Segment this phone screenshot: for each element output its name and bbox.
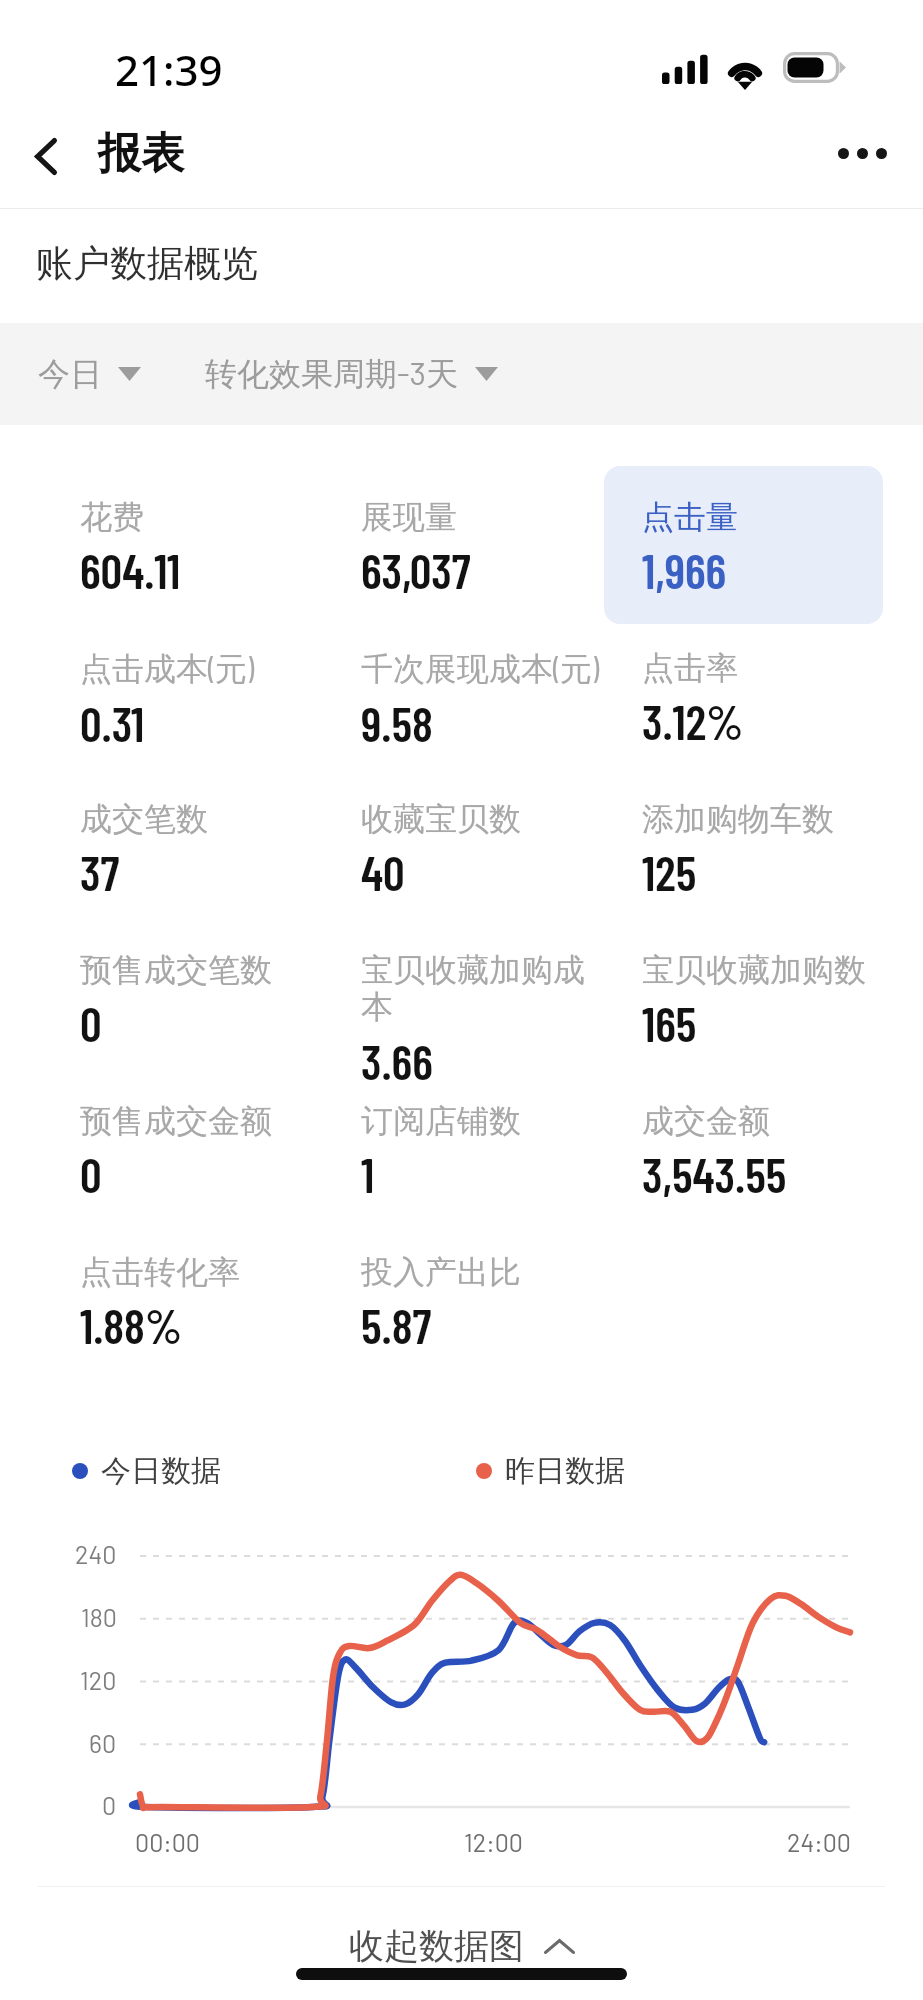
button[interactable]: 添加购物车数 bbox=[642, 799, 882, 901]
staticText: 24:00 bbox=[787, 1827, 851, 1857]
staticText: 收起数据图 bbox=[349, 1924, 524, 1968]
staticText: 3.12% bbox=[642, 692, 744, 750]
button[interactable]: 预售成交笔数 bbox=[80, 950, 320, 1052]
staticText: 21:39 bbox=[115, 41, 223, 98]
staticText: 3,543.55 bbox=[642, 1145, 787, 1203]
staticText: 0 bbox=[102, 1790, 117, 1820]
staticText: 3.66 bbox=[361, 1032, 433, 1090]
staticText: 240 bbox=[75, 1539, 117, 1569]
staticText: 180 bbox=[81, 1602, 117, 1632]
staticText: 点击转化率 bbox=[80, 1252, 240, 1292]
staticText: 报表 bbox=[98, 127, 184, 181]
button[interactable]: 收藏宝贝数 bbox=[361, 799, 601, 901]
button[interactable]: 花费 bbox=[80, 497, 320, 599]
staticText: 0 bbox=[80, 994, 102, 1052]
button[interactable]: 点击率 bbox=[642, 648, 882, 750]
staticText: 收藏宝贝数 bbox=[361, 799, 521, 839]
staticText: 展现量 bbox=[361, 497, 457, 537]
staticText: 0 bbox=[80, 1145, 102, 1203]
button[interactable]: 千次展现成本(元) bbox=[361, 648, 601, 752]
staticText: 60 bbox=[89, 1728, 117, 1758]
staticText: 1,966 bbox=[642, 541, 727, 599]
button[interactable]: 宝贝收藏加购数 bbox=[642, 950, 882, 1052]
staticText: 165 bbox=[642, 994, 697, 1052]
staticText: 花费 bbox=[80, 497, 144, 537]
button[interactable]: 订阅店铺数 bbox=[361, 1101, 601, 1203]
staticText: 12:00 bbox=[464, 1827, 523, 1857]
staticText: 1 bbox=[361, 1145, 375, 1203]
button[interactable]: 展现量 bbox=[361, 497, 601, 599]
staticText: 订阅店铺数 bbox=[361, 1101, 521, 1141]
staticText: 今日数据 bbox=[101, 1452, 221, 1490]
button[interactable]: More options bbox=[817, 108, 907, 198]
staticText: 5.87 bbox=[361, 1296, 432, 1354]
staticText: 昨日数据 bbox=[505, 1452, 625, 1490]
button[interactable]: 点击成本(元) bbox=[80, 648, 320, 752]
staticText: 63,037 bbox=[361, 541, 471, 599]
staticText: 投入产出比 bbox=[361, 1252, 521, 1292]
staticText: 点击成本(元) bbox=[80, 648, 255, 690]
staticText: 宝贝收藏加购数 bbox=[642, 950, 866, 990]
button[interactable]: Back bbox=[8, 118, 84, 194]
staticText: 今日 bbox=[38, 354, 102, 394]
staticText: 125 bbox=[642, 843, 697, 901]
staticText: 120 bbox=[80, 1665, 117, 1695]
button[interactable]: 投入产出比 bbox=[361, 1252, 601, 1354]
staticText: 账户数据概览 bbox=[36, 240, 258, 287]
staticText: 千次展现成本(元) bbox=[361, 648, 600, 690]
staticText: 点击率 bbox=[642, 648, 738, 688]
button[interactable]: 今日 bbox=[38, 346, 141, 402]
staticText: 点击量 bbox=[642, 497, 738, 537]
button[interactable]: 收起数据图 bbox=[0, 1888, 923, 1972]
staticText: 宝贝收藏加购成本 bbox=[361, 950, 601, 1028]
staticText: 0.31 bbox=[80, 694, 145, 752]
button[interactable]: 成交笔数 bbox=[80, 799, 320, 901]
staticText: 成交金额 bbox=[642, 1101, 770, 1141]
staticText: 预售成交笔数 bbox=[80, 950, 272, 990]
staticText: 1.88% bbox=[80, 1296, 183, 1354]
button[interactable]: 点击量 bbox=[604, 466, 883, 624]
button[interactable]: 预售成交金额 bbox=[80, 1101, 320, 1203]
staticText: 成交笔数 bbox=[80, 799, 208, 839]
staticText: 00:00 bbox=[135, 1827, 200, 1857]
button[interactable]: 转化效果周期-3天 bbox=[205, 345, 498, 403]
button[interactable]: 点击转化率 bbox=[80, 1252, 320, 1354]
staticText: 37 bbox=[80, 843, 120, 901]
staticText: 9.58 bbox=[361, 694, 433, 752]
button[interactable]: 成交金额 bbox=[642, 1101, 882, 1203]
staticText: 预售成交金额 bbox=[80, 1101, 272, 1141]
staticText: 604.11 bbox=[80, 541, 181, 599]
staticText: 转化效果周期-3天 bbox=[205, 353, 459, 395]
staticText: 40 bbox=[361, 843, 405, 901]
button[interactable]: 宝贝收藏加购成本 bbox=[361, 950, 601, 1090]
staticText: 添加购物车数 bbox=[642, 799, 834, 839]
